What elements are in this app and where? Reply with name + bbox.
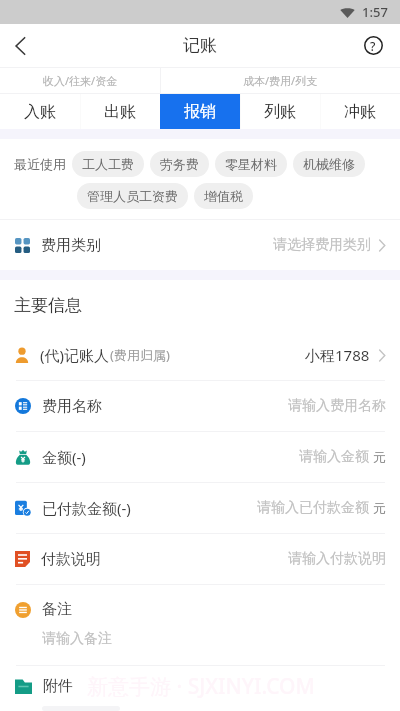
staticText: 请输入已付款金额 [257,499,369,517]
button[interactable]: 增值税 [194,183,253,209]
staticText: 新意手游 · SJXINYI.COM [87,672,315,701]
button[interactable]: 金额(-) [0,432,400,482]
staticText: 劳务费 [160,156,199,172]
button[interactable]: 列账 [240,94,320,129]
staticText: 费用类别 [41,236,101,255]
button[interactable]: (代)记账人 [0,330,400,380]
staticText: 增值税 [204,188,243,204]
staticText: 机械维修 [303,156,355,172]
button[interactable]: 付款说明 [0,534,400,584]
staticText: ? [370,38,376,54]
staticText: 记账 [183,35,217,56]
staticText: 成本/费用/列支 [243,73,318,88]
staticText: 报销 [184,102,216,122]
button[interactable]: 管理人员工资费 [77,183,188,209]
button[interactable]: 备注 [0,585,400,665]
button[interactable]: 费用类别 [0,220,400,270]
button[interactable]: 劳务费 [150,151,209,177]
button[interactable]: 收入/往来/资金 [0,68,160,93]
staticText: 最近使用 [14,156,66,172]
staticText: (代)记账人 [40,345,110,365]
staticText: (费用归属) [110,346,170,364]
button[interactable]: Back [0,24,40,67]
staticText: 请输入金额 [299,448,369,466]
staticText: 请选择费用类别 [273,236,371,254]
button[interactable]: 成本/费用/列支 [161,68,400,93]
button[interactable]: 入账 [0,94,80,129]
staticText: 零星材料 [225,156,277,172]
staticText: 冲账 [344,102,376,122]
staticText: 元 [373,449,386,465]
staticText: 收入/往来/资金 [43,73,118,88]
staticText: 金额(-) [42,447,86,467]
button[interactable]: 附件 [0,666,400,706]
staticText: 费用名称 [42,397,102,416]
staticText: 列账 [264,102,296,122]
button[interactable]: 费用名称 [0,381,400,431]
staticText: 付款说明 [41,550,101,569]
button[interactable]: 已付款金额(-) [0,483,400,533]
staticText: 元 [373,500,386,516]
staticText: 工人工费 [82,156,134,172]
button[interactable]: 零星材料 [215,151,287,177]
button[interactable]: 冲账 [320,94,400,129]
staticText: 小程1788 [305,345,370,365]
staticText: 主要信息 [14,295,82,316]
staticText: 请输入付款说明 [288,550,386,568]
button[interactable]: 出账 [80,94,160,129]
staticText: 备注 [42,600,72,619]
button[interactable]: 机械维修 [293,151,365,177]
staticText: 请输入备注 [42,630,112,648]
staticText: 请输入费用名称 [288,397,386,415]
button[interactable]: Help [346,24,400,67]
staticText: 附件 [43,677,73,696]
button[interactable]: 工人工费 [72,151,144,177]
staticText: 入账 [24,102,56,122]
staticText: 已付款金额(-) [42,498,131,518]
staticText: 管理人员工资费 [87,188,178,204]
staticText: 1:57 [362,3,388,21]
staticText: 出账 [104,102,136,122]
button[interactable]: 报销 [160,94,240,129]
